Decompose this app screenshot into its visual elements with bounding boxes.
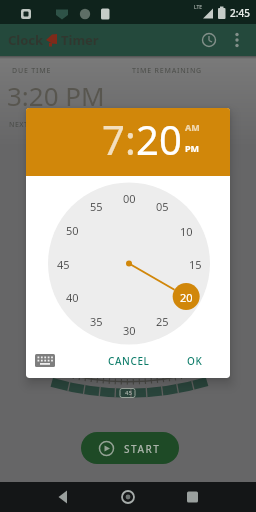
staticText: CANCEL [108,354,150,368]
button[interactable] [197,28,221,52]
button[interactable]: AM [180,121,204,133]
staticText: Clock [8,31,44,49]
staticText: 25 [156,314,169,328]
staticText: 15 [189,257,202,271]
staticText: NEXT TIME [9,120,50,130]
staticText: START [124,442,161,456]
staticText: AM [185,121,200,133]
staticText: 00 [123,191,136,205]
staticText: 20 [180,290,193,304]
staticText: OK [187,354,203,368]
staticText: 3:20 PM [7,78,105,110]
button[interactable]: PM [180,142,204,154]
staticText: 35 [90,314,103,328]
button[interactable] [172,482,212,512]
staticText: 55 [90,199,103,213]
button[interactable] [30,349,60,373]
staticText: 2:45 [230,6,250,20]
button[interactable] [227,28,247,52]
staticText: 40 [66,290,79,304]
button[interactable]: CANCEL [99,350,159,372]
staticText: Timer [61,31,99,49]
staticText: 30 [123,323,136,337]
staticText: 50 [66,223,79,237]
staticText: : [125,112,136,164]
button[interactable] [108,482,148,512]
staticText: 05 [156,199,169,213]
staticText: LTE [194,4,203,11]
button[interactable]: OK [177,350,213,372]
staticText: DUE TIME [12,66,52,76]
staticText: 45 [125,389,132,397]
button[interactable]: START [81,432,179,464]
button[interactable] [43,482,83,512]
staticText: PM [185,142,200,154]
staticText: TIME REMAINING [132,66,202,76]
staticText: 7 [102,112,125,164]
staticText: 45 [57,257,70,271]
staticText: 10 [180,224,193,238]
staticText: 20 [136,112,182,164]
